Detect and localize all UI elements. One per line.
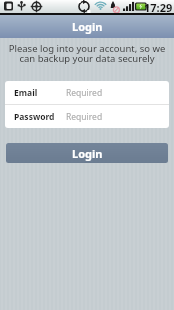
- staticText: Required: [66, 111, 103, 123]
- staticText: Login: [72, 146, 103, 161]
- staticText: 17:29: [144, 0, 173, 13]
- staticText: Login: [72, 19, 103, 34]
- button[interactable]: Login: [6, 143, 168, 163]
- staticText: Required: [66, 87, 103, 99]
- button[interactable]: Email: [5, 81, 169, 104]
- button[interactable]: Password: [5, 105, 169, 128]
- staticText: Email: [14, 87, 38, 99]
- staticText: Please log into your account, so we can …: [7, 42, 167, 65]
- staticText: Password: [14, 111, 55, 123]
